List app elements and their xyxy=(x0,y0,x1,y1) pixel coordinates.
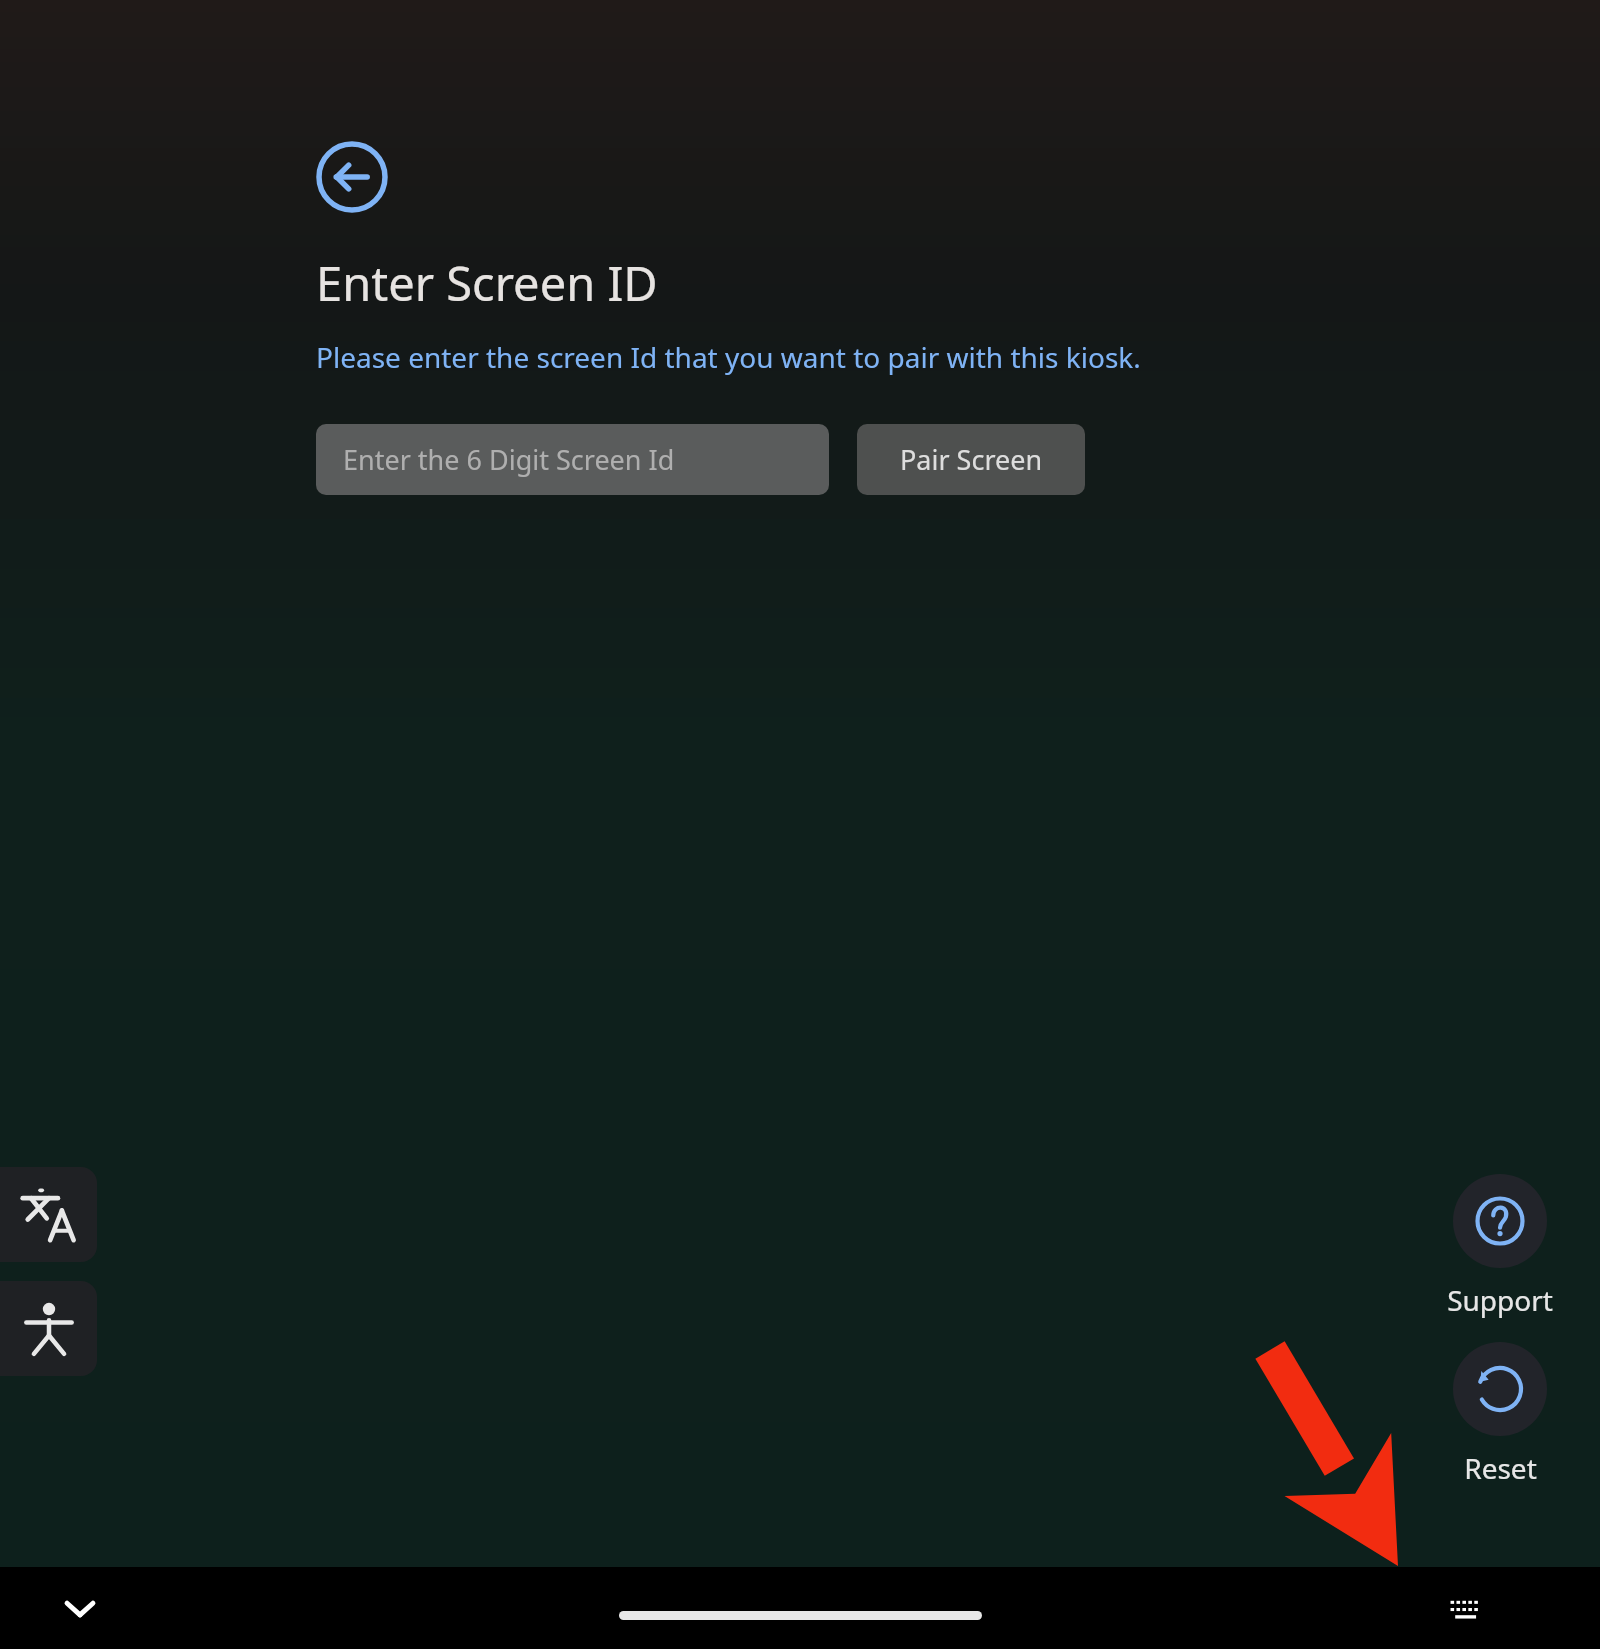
button[interactable]: Support xyxy=(1453,1174,1547,1268)
staticText: Pair Screen xyxy=(900,441,1043,478)
button[interactable]: Translate xyxy=(0,1167,97,1262)
staticText: Support xyxy=(1447,1281,1553,1319)
staticText: Please enter the screen Id that you want… xyxy=(316,338,1141,376)
button[interactable]: Hide keyboard xyxy=(48,1576,112,1640)
staticText: Enter the 6 Digit Screen Id xyxy=(343,441,675,478)
button[interactable]: Switch keyboard xyxy=(1437,1579,1495,1637)
button[interactable]: Home xyxy=(619,1611,982,1620)
staticText: Enter Screen ID xyxy=(316,251,658,315)
button[interactable]: Reset xyxy=(1453,1342,1547,1436)
button[interactable]: Pair Screen xyxy=(857,424,1085,495)
staticText: Reset xyxy=(1464,1449,1537,1487)
button[interactable]: Back xyxy=(316,141,388,213)
button[interactable]: Enter the 6 Digit Screen Id xyxy=(316,424,829,495)
button[interactable]: Accessibility xyxy=(0,1281,97,1376)
